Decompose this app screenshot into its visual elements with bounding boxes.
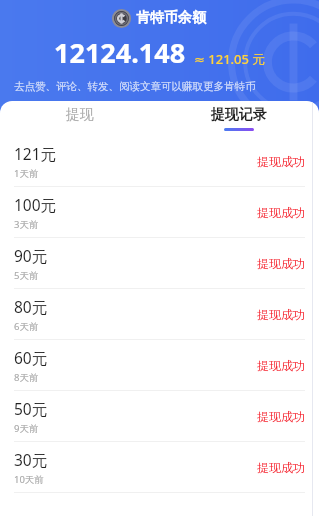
staticText: 提现成功 bbox=[257, 409, 305, 424]
button[interactable]: 30元 bbox=[0, 442, 319, 493]
staticText: 提现成功 bbox=[257, 256, 305, 271]
staticText: 提现成功 bbox=[257, 358, 305, 373]
staticText: 30元 bbox=[14, 449, 48, 470]
staticText: 8天前 bbox=[14, 371, 39, 384]
staticText: 80元 bbox=[14, 296, 48, 317]
button[interactable]: 100元 bbox=[0, 187, 319, 238]
staticText: 提现成功 bbox=[257, 460, 305, 475]
staticText: 60元 bbox=[14, 347, 48, 368]
staticText: 去点赞、评论、转发、阅读文章可以赚取更多肯特币 bbox=[14, 80, 319, 93]
staticText: 6天前 bbox=[14, 320, 39, 333]
staticText: 1天前 bbox=[14, 167, 39, 180]
staticText: 提现记录 bbox=[211, 106, 267, 124]
button[interactable]: 60元 bbox=[0, 340, 319, 391]
staticText: 12124.148 bbox=[54, 34, 186, 71]
button[interactable]: 50元 bbox=[0, 391, 319, 442]
staticText: 90元 bbox=[14, 245, 48, 266]
staticText: 5天前 bbox=[14, 269, 39, 282]
staticText: 提现成功 bbox=[257, 307, 305, 322]
staticText: 3天前 bbox=[14, 218, 39, 231]
staticText: ≈ 121.05 元 bbox=[194, 50, 266, 68]
staticText: 10天前 bbox=[14, 473, 44, 486]
staticText: 提现成功 bbox=[257, 154, 305, 169]
staticText: 提现 bbox=[66, 106, 94, 124]
button[interactable]: 80元 bbox=[0, 289, 319, 340]
button[interactable]: 提现记录 bbox=[159, 101, 319, 136]
staticText: 100元 bbox=[14, 194, 57, 215]
button[interactable]: 提现 bbox=[0, 101, 159, 136]
button[interactable]: 90元 bbox=[0, 238, 319, 289]
staticText: 9天前 bbox=[14, 422, 39, 435]
staticText: 肯特币余额 bbox=[136, 9, 206, 27]
staticText: 121元 bbox=[14, 143, 57, 164]
staticText: 提现成功 bbox=[257, 205, 305, 220]
staticText: 50元 bbox=[14, 398, 48, 419]
button[interactable]: 121元 bbox=[0, 136, 319, 187]
